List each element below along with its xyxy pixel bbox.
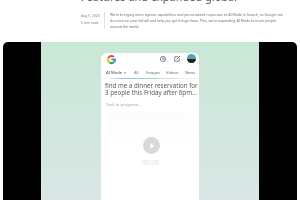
staticText: AI Mode	[106, 70, 122, 75]
button[interactable]: Account	[187, 54, 196, 63]
staticText: We're bringing more agentic capabilities…	[110, 12, 284, 29]
button[interactable]: History	[160, 56, 166, 62]
button[interactable]: All	[134, 70, 139, 75]
staticText: 5 min read	[81, 20, 99, 25]
button[interactable]: News	[185, 70, 196, 75]
button[interactable]: AI Mode	[106, 70, 126, 75]
button[interactable]: Images	[146, 70, 160, 75]
button[interactable]: Play	[143, 137, 160, 154]
staticText: 00:28	[142, 158, 159, 167]
staticText: find me a dinner reservation for 3 peopl…	[105, 81, 198, 96]
button[interactable]: Videos	[166, 70, 179, 75]
button[interactable]: New chat	[174, 56, 180, 62]
staticText: Aug 5, 2025	[81, 13, 100, 18]
staticText: Features and expanded global	[9, 0, 300, 4]
staticText: Task in progress...	[106, 102, 142, 108]
